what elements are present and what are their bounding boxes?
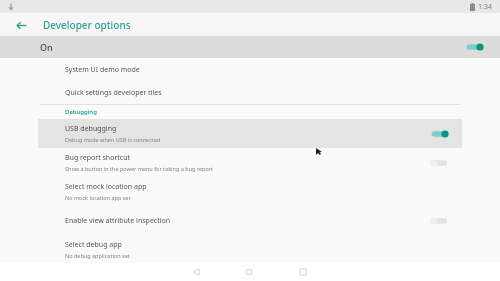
staticText: 1:34 (478, 2, 492, 12)
button[interactable]: Home (241, 264, 257, 280)
button[interactable]: Recents (295, 264, 311, 280)
staticText: No debug application set (65, 252, 130, 259)
button[interactable]: USB debugging (38, 119, 462, 148)
button[interactable]: Toggle (430, 128, 450, 140)
staticText: Enable view attribute inspection (65, 216, 171, 226)
button[interactable]: Toggle (465, 41, 485, 53)
staticText: Developer options (43, 18, 131, 32)
staticText: System UI demo mode (65, 65, 140, 75)
button[interactable]: Select debug app (0, 235, 500, 263)
staticText: Show a button in the power menu for taki… (65, 165, 214, 172)
button[interactable]: Toggle (430, 157, 450, 169)
button[interactable]: Quick settings developer tiles (0, 81, 500, 104)
button[interactable]: Enable view attribute inspection (0, 206, 500, 235)
button[interactable]: System UI demo mode (0, 58, 500, 81)
staticText: Select mock location app (65, 182, 147, 192)
button[interactable]: Back (12, 16, 30, 34)
button[interactable]: Select mock location app (0, 177, 500, 206)
staticText: USB debugging (65, 124, 117, 134)
button[interactable]: Back (188, 264, 204, 280)
staticText: Debugging (65, 108, 97, 116)
staticText: On (40, 41, 53, 53)
staticText: Quick settings developer tiles (65, 88, 162, 98)
staticText: Select debug app (65, 240, 122, 250)
staticText: No mock location app set (65, 194, 131, 201)
button[interactable]: Bug report shortcut (0, 148, 500, 177)
button[interactable]: On (0, 36, 500, 58)
button[interactable]: Toggle (430, 215, 450, 227)
staticText: Bug report shortcut (65, 153, 131, 163)
staticText: Debug mode when USB is connected (65, 136, 161, 143)
